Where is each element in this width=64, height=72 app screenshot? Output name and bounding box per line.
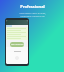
staticText: Professional bbox=[20, 4, 45, 9]
staticText: GET STARTED bbox=[11, 43, 24, 46]
staticText: Lorem ipsum dolor sit amet, consectetur … bbox=[19, 12, 46, 18]
other: Logo bbox=[15, 56, 19, 60]
button[interactable]: GET STARTED bbox=[10, 42, 24, 47]
